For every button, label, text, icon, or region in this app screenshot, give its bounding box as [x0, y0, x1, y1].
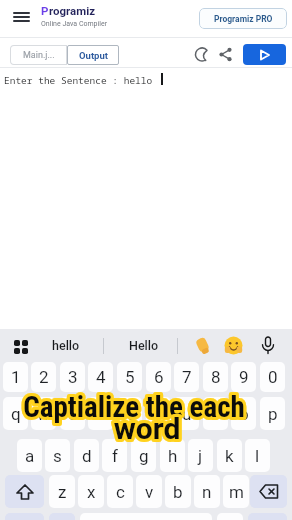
button[interactable]: h — [160, 439, 185, 472]
button[interactable]: 8 — [203, 362, 228, 392]
staticText: z — [58, 482, 67, 502]
button[interactable] — [13, 339, 29, 355]
button[interactable]: g — [131, 439, 156, 472]
button[interactable]: Hello — [109, 333, 179, 357]
staticText: i — [213, 404, 218, 424]
button[interactable] — [217, 513, 243, 520]
staticText: f — [112, 446, 118, 466]
staticText: k — [225, 446, 234, 466]
staticText: l — [255, 446, 260, 466]
button[interactable]: z — [49, 475, 75, 508]
button[interactable]: q — [3, 397, 28, 430]
staticText: w — [37, 404, 50, 424]
staticText: b — [173, 482, 183, 502]
button[interactable]: v — [136, 475, 162, 508]
staticText: hello — [52, 338, 80, 353]
staticText: q — [11, 404, 21, 424]
staticText: a — [25, 446, 35, 466]
button[interactable]: w — [31, 397, 56, 430]
button[interactable]: s — [45, 439, 70, 472]
staticText: 7 — [182, 367, 192, 387]
staticText: Captialize the each — [0, 390, 280, 424]
staticText: t — [127, 404, 133, 424]
button[interactable]: 6 — [146, 362, 171, 392]
button[interactable] — [243, 44, 286, 65]
staticText: s — [53, 446, 62, 466]
staticText: 3 — [68, 367, 78, 387]
staticText: x — [87, 482, 96, 502]
staticText: m — [229, 482, 244, 502]
staticText: Output — [79, 50, 108, 61]
staticText: r — [98, 404, 104, 424]
button[interactable]: k — [217, 439, 242, 472]
button[interactable]: Main.j... — [10, 45, 67, 65]
button[interactable]: y — [146, 397, 171, 430]
button[interactable]: 0 — [260, 362, 285, 392]
staticText: 6 — [154, 367, 164, 387]
button[interactable]: Programiz PRO — [199, 8, 287, 29]
button[interactable] — [9, 7, 34, 29]
button[interactable]: a — [17, 439, 42, 472]
staticText: 0 — [268, 367, 278, 387]
button[interactable]: f — [102, 439, 127, 472]
staticText: 9 — [239, 367, 249, 387]
staticText: Captialize the each — [0, 390, 280, 424]
button[interactable]: r — [88, 397, 113, 430]
staticText: Hello — [129, 338, 159, 353]
staticText: Enter the Sentence : hello — [4, 74, 153, 87]
button[interactable]: c — [107, 475, 133, 508]
staticText: u — [182, 404, 192, 424]
button[interactable]: i — [203, 397, 228, 430]
button[interactable] — [258, 335, 278, 356]
button[interactable]: t — [117, 397, 142, 430]
staticText: 2 — [39, 367, 49, 387]
staticText: c — [116, 482, 125, 502]
button[interactable]: 4 — [88, 362, 113, 392]
button[interactable]: e — [60, 397, 85, 430]
staticText: 5 — [125, 367, 135, 387]
staticText: Programiz PRO — [214, 14, 273, 24]
button[interactable]: m — [223, 475, 249, 508]
button[interactable]: 7 — [174, 362, 199, 392]
staticText: j — [198, 446, 203, 466]
button[interactable]: 5 — [117, 362, 142, 392]
button[interactable]: p — [260, 397, 285, 430]
button[interactable]: j — [188, 439, 213, 472]
button[interactable]: o — [231, 397, 256, 430]
staticText: p — [268, 404, 278, 424]
button[interactable]: u — [174, 397, 199, 430]
button[interactable]: d — [74, 439, 99, 472]
button[interactable] — [250, 475, 287, 508]
button[interactable]: 3 — [60, 362, 85, 392]
button[interactable]: l — [245, 439, 270, 472]
staticText: o — [239, 404, 249, 424]
button[interactable] — [5, 475, 44, 508]
button[interactable]: hello — [34, 333, 98, 357]
button[interactable]: b — [165, 475, 191, 508]
staticText: v — [145, 482, 154, 502]
button[interactable] — [217, 46, 234, 63]
button[interactable]: 2 — [31, 362, 56, 392]
staticText: g — [139, 446, 149, 466]
button[interactable]: 1 — [3, 362, 28, 392]
staticText: Online Java Compiler — [41, 20, 108, 28]
staticText: e — [68, 404, 78, 424]
staticText: Main.j... — [23, 50, 55, 61]
button[interactable]: Output — [67, 45, 119, 65]
staticText: rogramiz — [49, 4, 96, 17]
button[interactable]: n — [194, 475, 220, 508]
button[interactable] — [194, 46, 211, 63]
staticText: word — [1, 411, 292, 446]
staticText: y — [154, 404, 163, 424]
staticText: 1 — [11, 367, 21, 387]
staticText: P — [41, 4, 49, 17]
button[interactable]: x — [78, 475, 104, 508]
button[interactable]: 9 — [231, 362, 256, 392]
button[interactable] — [193, 336, 213, 356]
staticText: h — [168, 446, 178, 466]
button[interactable] — [223, 335, 244, 356]
